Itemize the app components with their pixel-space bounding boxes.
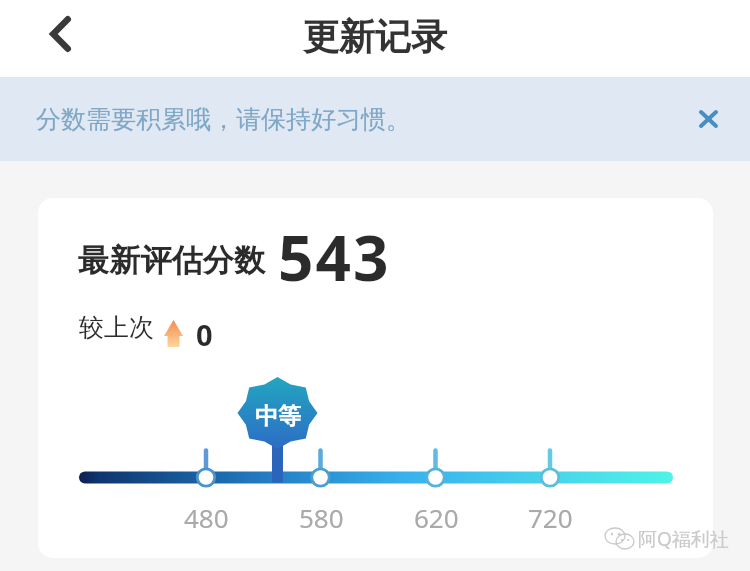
staticText: 720 (528, 500, 573, 535)
staticText: 480 (184, 500, 229, 535)
staticText: 543 (278, 215, 391, 299)
staticText: 中等 (255, 402, 301, 431)
staticText: 阿Q福利社 (638, 526, 729, 552)
button[interactable]: Close (686, 97, 730, 141)
other: Increase (164, 320, 183, 347)
button[interactable]: 分数需要积累哦，请保持好习惯。 (0, 77, 750, 161)
button[interactable]: 最新评估分数 (38, 198, 713, 558)
staticText: 580 (299, 500, 344, 535)
staticText: 最新评估分数 (78, 241, 266, 280)
staticText: 更新记录 (303, 14, 447, 59)
other: WeChat (596, 527, 636, 551)
button[interactable]: Back (28, 2, 92, 66)
staticText: 0 (196, 315, 213, 354)
staticText: 分数需要积累哦，请保持好习惯。 (36, 104, 411, 135)
staticText: 较上次 (79, 312, 154, 343)
staticText: 620 (414, 500, 459, 535)
